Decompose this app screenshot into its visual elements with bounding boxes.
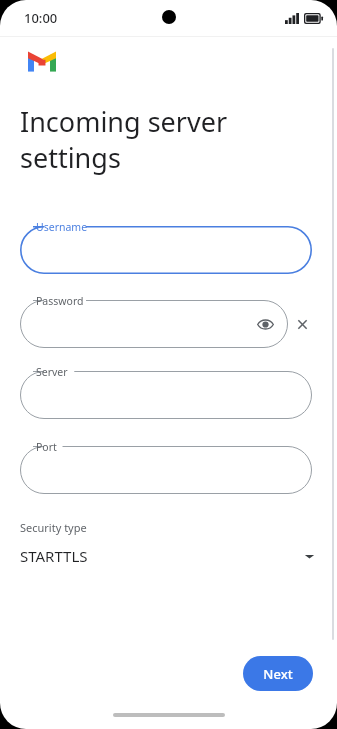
button[interactable]: Next bbox=[243, 656, 313, 691]
button[interactable]: Clear password bbox=[288, 310, 316, 338]
staticText: STARTTLS bbox=[20, 546, 88, 566]
button[interactable]: Server bbox=[20, 371, 312, 419]
button[interactable]: Port bbox=[20, 446, 312, 494]
staticText: Password bbox=[36, 294, 84, 308]
staticText: 10:00 bbox=[24, 9, 58, 27]
staticText: Server bbox=[36, 365, 68, 379]
staticText: Next bbox=[263, 665, 293, 683]
staticText: Security type bbox=[20, 520, 87, 535]
button[interactable]: Show password bbox=[252, 311, 278, 337]
button[interactable]: Password bbox=[20, 300, 288, 348]
button[interactable]: Security type bbox=[0, 520, 337, 566]
button[interactable]: Username bbox=[20, 226, 312, 274]
staticText: Incoming server settings bbox=[20, 103, 313, 176]
staticText: Username bbox=[36, 220, 88, 234]
staticText: Port bbox=[36, 440, 57, 454]
